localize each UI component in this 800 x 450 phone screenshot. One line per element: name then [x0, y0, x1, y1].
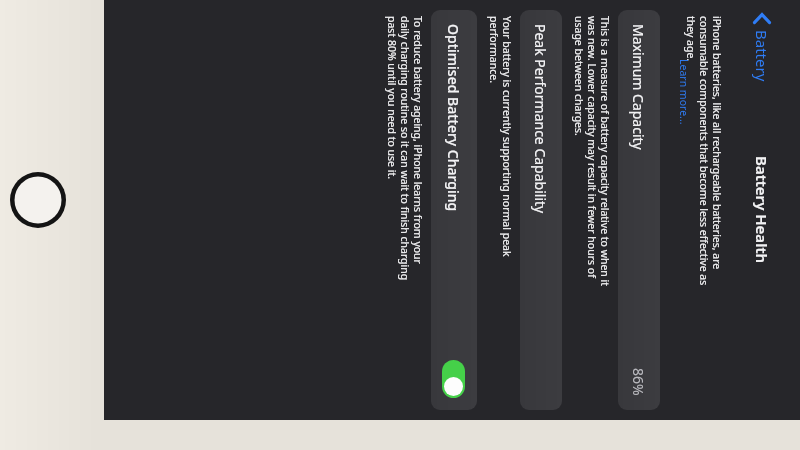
- button[interactable]: Optimised Battery Charging: [431, 10, 477, 410]
- staticText: 86%: [629, 368, 648, 396]
- button[interactable]: Home: [8, 170, 68, 230]
- button[interactable]: Optimised Battery Charging, on: [442, 360, 465, 398]
- staticText: To reduce battery ageing, iPhone learns …: [385, 16, 425, 281]
- staticText: Maximum Capacity: [629, 24, 648, 150]
- staticText: This is a measure of battery capacity re…: [572, 16, 612, 287]
- button[interactable]: Learn more...: [677, 59, 691, 125]
- button[interactable]: Battery: [748, 8, 776, 86]
- staticText: Battery Health: [752, 156, 772, 264]
- staticText: iPhone batteries, like all rechargeable …: [684, 16, 724, 286]
- button[interactable]: Maximum Capacity: [618, 10, 660, 410]
- staticText: Learn more...: [677, 59, 691, 125]
- staticText: Peak Performance Capability: [531, 24, 550, 214]
- staticText: Battery: [752, 30, 772, 82]
- staticText: Optimised Battery Charging: [444, 24, 463, 212]
- button[interactable]: Peak Performance Capability: [520, 10, 562, 410]
- staticText: Your battery is currently supporting nor…: [487, 16, 514, 257]
